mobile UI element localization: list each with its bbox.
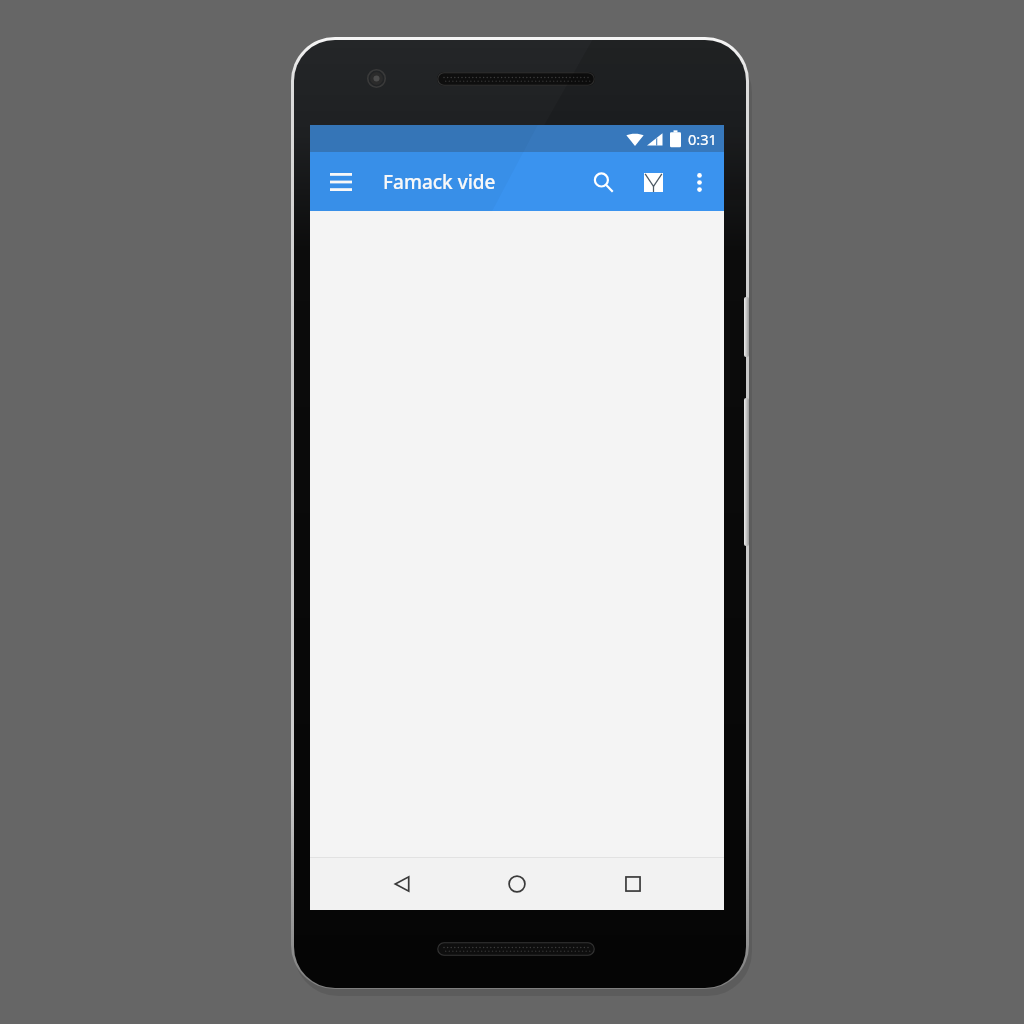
- staticText: 0:31: [688, 129, 717, 149]
- button[interactable]: More options: [677, 160, 721, 204]
- button[interactable]: Home: [493, 860, 541, 908]
- button[interactable]: Open navigation drawer: [319, 160, 363, 204]
- staticText: Famack vide: [383, 169, 496, 195]
- button[interactable]: Recent apps: [609, 860, 657, 908]
- button[interactable]: Back: [378, 860, 426, 908]
- button[interactable]: Search: [581, 160, 625, 204]
- button[interactable]: Mail: [631, 160, 675, 204]
